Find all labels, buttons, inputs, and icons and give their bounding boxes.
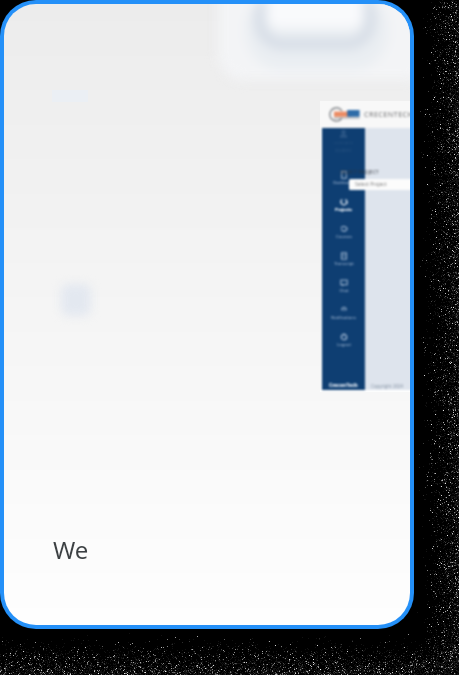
staticText: CrecenTech	[329, 382, 358, 389]
other: Chat	[340, 279, 348, 287]
button[interactable]: Logout	[322, 333, 365, 348]
staticText: Logout	[337, 342, 351, 348]
other: Notifications	[340, 306, 348, 314]
staticText: CRECENTECH	[364, 109, 410, 119]
staticText: Projects	[335, 207, 352, 213]
staticText: Notifications	[331, 315, 356, 321]
staticText: We	[53, 533, 89, 566]
other: Logout	[340, 333, 348, 341]
staticText: Chat	[339, 288, 349, 294]
staticText: Courses	[336, 234, 352, 240]
button[interactable]: Select Project	[349, 179, 410, 190]
staticText: Dashboard	[333, 180, 355, 186]
other: Dashboard	[340, 171, 348, 179]
button[interactable]: Transcript	[322, 252, 365, 267]
button[interactable]: Dashboard	[322, 171, 365, 186]
other: Courses	[340, 225, 348, 233]
staticText: Select Project	[355, 181, 387, 188]
staticText: SELECT PROJECT	[340, 169, 379, 176]
other: Transcript	[340, 252, 348, 260]
button[interactable]: Courses	[322, 225, 365, 240]
staticText: Transcript	[334, 261, 354, 267]
staticText: Copyright 2024	[371, 383, 404, 389]
other: Projects	[340, 198, 348, 206]
button[interactable]: Notifications	[322, 306, 365, 321]
button[interactable]: Chat	[322, 279, 365, 294]
button[interactable]: Projects	[322, 198, 365, 213]
